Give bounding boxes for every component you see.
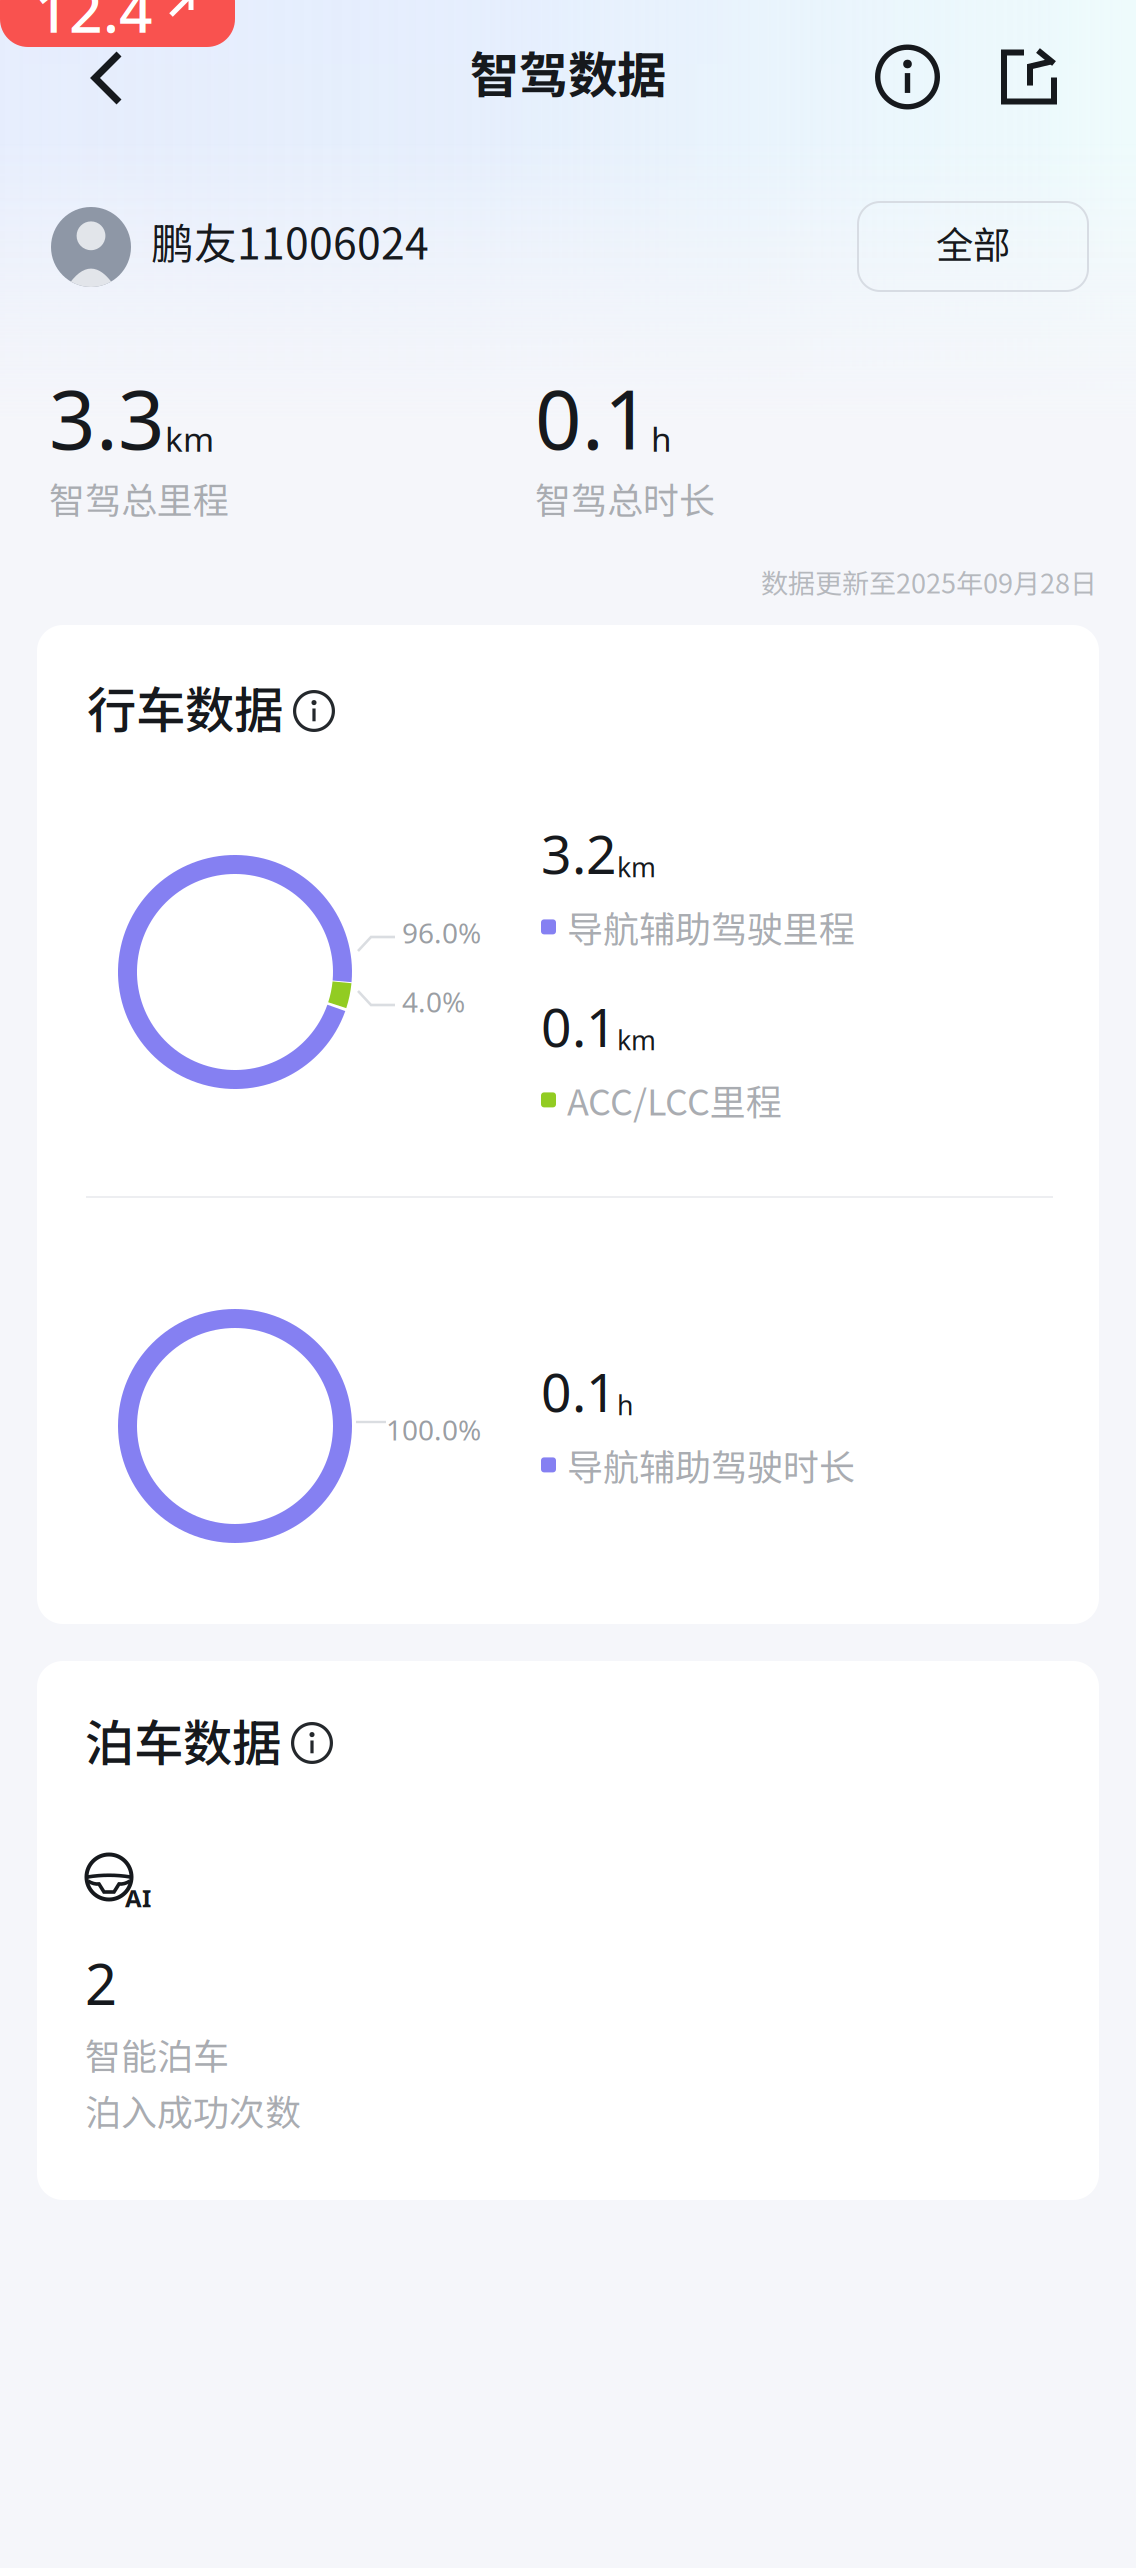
staticText: 3.2 [541,818,617,889]
staticText: 3.3 [49,364,165,472]
staticText: 导航辅助驾驶里程 [567,901,855,953]
staticText: 96.0% [402,914,481,951]
staticText: 行车数据 [87,671,283,742]
button[interactable]: 分享 [973,22,1085,132]
staticText: AI [125,1882,151,1914]
staticText: 2 [85,1946,117,2020]
staticText: 0.1 [541,1356,617,1427]
button[interactable]: 返回 [48,23,166,133]
staticText: km [617,1022,656,1058]
staticText: 导航辅助驾驶时长 [567,1439,855,1491]
staticText: km [165,417,214,461]
staticText: 12.4 [35,0,153,49]
staticText: 全部 [936,215,1010,270]
staticText: 100.0% [386,1411,481,1448]
staticText: 泊车数据 [85,1704,281,1775]
staticText: 智驾总时长 [535,472,715,524]
staticText: 数据更新至2025年09月28日 [761,562,1097,601]
staticText: 泊入成功次数 [85,2084,301,2136]
staticText: km [617,849,656,885]
staticText: 0.1 [535,364,651,472]
staticText: h [617,1387,633,1423]
staticText: ACC/LCC里程 [567,1074,782,1126]
staticText: h [651,417,672,461]
staticText: 智能泊车 [85,2028,229,2080]
staticText: 鹏友11006024 [151,210,429,272]
staticText: 4.0% [402,983,465,1020]
button[interactable]: 说明 [842,22,973,132]
button[interactable]: 全部 [858,202,1088,291]
staticText: 智驾总里程 [49,472,229,524]
staticText: 0.1 [541,991,617,1062]
staticText: 智驾数据 [470,36,666,107]
